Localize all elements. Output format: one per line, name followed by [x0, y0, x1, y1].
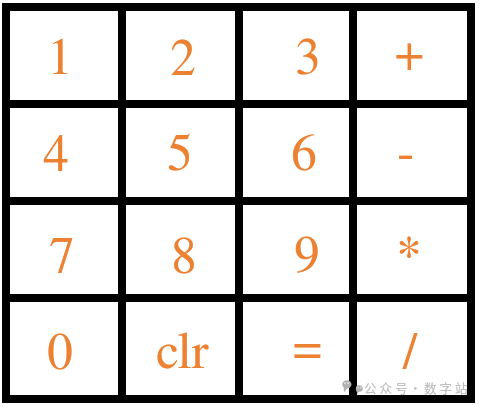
staticText: 数字站: [424, 378, 471, 396]
button[interactable]: 3: [242, 11, 348, 100]
button[interactable]: 8: [126, 205, 235, 294]
button[interactable]: Divide: [357, 302, 467, 395]
staticText: 6: [291, 129, 317, 180]
staticText: /: [402, 328, 418, 379]
button[interactable]: 0: [10, 302, 118, 395]
button[interactable]: 7: [10, 205, 118, 294]
staticText: 0: [47, 328, 73, 379]
other: Publisher logo: [341, 379, 364, 396]
staticText: *: [396, 231, 422, 282]
staticText: ·: [409, 378, 425, 396]
staticText: clr: [156, 327, 209, 378]
button[interactable]: 4: [10, 108, 118, 197]
button[interactable]: 9: [242, 205, 348, 294]
button[interactable]: 5: [126, 108, 235, 197]
staticText: 9: [294, 231, 320, 282]
staticText: 4: [43, 130, 69, 181]
staticText: 7: [49, 232, 75, 283]
staticText: 公众号: [364, 378, 411, 396]
button[interactable]: 2: [126, 11, 235, 100]
button[interactable]: 1: [10, 11, 118, 100]
button[interactable]: 6: [242, 108, 348, 197]
staticText: +: [395, 29, 424, 80]
staticText: 5: [167, 129, 193, 180]
button[interactable]: Multiply: [357, 205, 467, 294]
button[interactable]: Equals: [242, 302, 348, 395]
button[interactable]: clr: [126, 302, 235, 395]
button[interactable]: Plus: [357, 11, 467, 100]
staticText: 3: [295, 33, 321, 84]
staticText: -: [397, 128, 414, 179]
button[interactable]: Minus: [357, 108, 467, 197]
staticText: =: [293, 323, 322, 374]
staticText: 2: [170, 34, 196, 85]
staticText: 1: [47, 33, 73, 84]
staticText: 8: [171, 232, 197, 283]
